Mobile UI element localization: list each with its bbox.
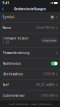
button[interactable]: Firmware Version [0,33,60,47]
staticText: Tarif [3,83,9,87]
staticText: 9:41 [2,1,9,5]
staticText: 1.20 [3,41,10,44]
staticText: Nachtmodus [3,61,21,66]
staticText: Gerät zurücksetzen · Support kontaktiere… [9,102,51,106]
staticText: Name [3,26,12,30]
button[interactable]: Tarif [0,80,60,90]
staticText: Überlastschutz [3,72,23,76]
staticText: Aktualisieren [42,39,56,42]
staticText: Passwortänderung [3,51,30,55]
staticText: Symbol [3,15,15,19]
button[interactable]: Überlastschutz [0,69,60,79]
button[interactable]: Name [0,23,60,33]
staticText: Zubehörsensor [3,93,25,98]
button[interactable]: Nachtmodus [0,58,60,69]
staticText: 1500 W [43,72,55,76]
staticText: nicht aktiv [41,93,55,97]
staticText: Firmware Version [3,36,29,40]
button[interactable]: Symbol [0,12,60,22]
button[interactable]: Zubehörsensor [0,90,60,101]
staticText: Geräteeinstellungen [14,7,46,11]
button[interactable]: Passwortänderung [0,48,60,58]
staticText: Smart Meter [36,26,55,30]
button[interactable]: Back [0,6,6,12]
staticText: 28,25 ct/kWh [36,83,55,87]
